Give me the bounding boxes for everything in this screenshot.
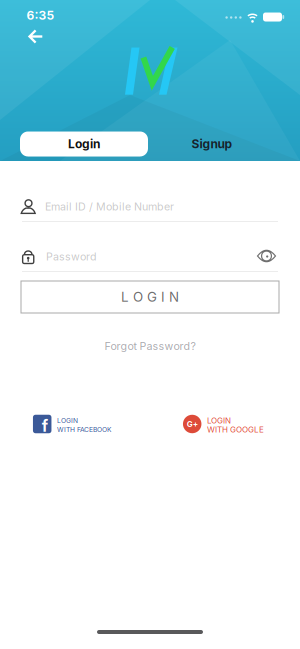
staticText: f [42,417,48,435]
staticText: L O G I N [121,289,179,305]
button[interactable]: Signup [148,131,276,156]
staticText: LOGIN [57,417,78,425]
button[interactable]: Login with Google [0,0,300,649]
staticText: Forgot Password? [104,340,195,352]
staticText: WITH GOOGLE [207,425,264,434]
button[interactable]: Login with Facebook [0,0,300,649]
staticText: Login [68,137,100,151]
button[interactable]: Back [20,21,50,51]
staticText: LOGIN [207,416,231,425]
staticText: Password [46,250,97,263]
staticText: Signup [191,137,232,151]
staticText: WITH FACEBOOK [57,426,111,434]
button[interactable]: Login [20,131,148,156]
button[interactable]: Forgot Password? [100,336,199,356]
staticText: Email ID / Mobile Number [45,200,174,213]
staticText: G+ [187,419,198,429]
button[interactable]: L O G I N [21,281,279,313]
staticText: 6:35 [26,8,54,23]
button[interactable]: Show password [251,244,282,268]
